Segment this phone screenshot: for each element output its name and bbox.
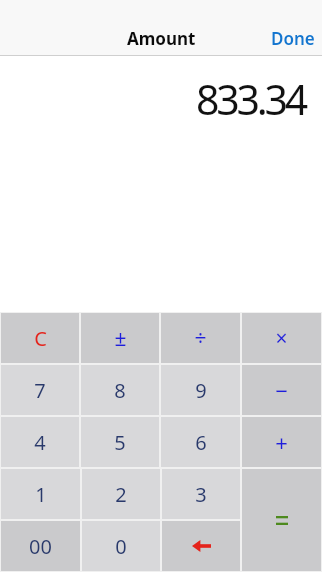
button[interactable]: ÷: [161, 313, 240, 363]
staticText: C: [34, 325, 47, 352]
button[interactable]: 4: [1, 417, 79, 467]
button[interactable]: 6: [161, 417, 240, 467]
button[interactable]: 1: [1, 469, 80, 519]
staticText: Amount: [127, 27, 196, 50]
staticText: 5: [114, 429, 126, 456]
staticText: 0: [115, 533, 127, 560]
button[interactable]: [162, 521, 240, 571]
button[interactable]: 00: [1, 521, 80, 571]
staticText: 7: [34, 377, 46, 404]
button[interactable]: 0: [82, 521, 160, 571]
staticText: 8: [114, 377, 126, 404]
staticText: ×: [275, 324, 288, 353]
staticText: 9: [195, 377, 207, 404]
button[interactable]: 7: [1, 365, 79, 415]
button[interactable]: [242, 469, 321, 571]
staticText: −: [275, 375, 288, 405]
staticText: 3: [195, 481, 207, 508]
button[interactable]: +: [242, 417, 321, 467]
button[interactable]: Done: [271, 27, 322, 55]
staticText: +: [275, 427, 288, 457]
staticText: 6: [195, 429, 207, 456]
button[interactable]: 3: [162, 469, 240, 519]
button[interactable]: ±: [81, 313, 159, 363]
button[interactable]: 5: [81, 417, 159, 467]
staticText: 833.34: [196, 71, 306, 127]
button[interactable]: ×: [242, 313, 321, 363]
staticText: ±: [114, 324, 127, 353]
button[interactable]: −: [242, 365, 321, 415]
staticText: Done: [271, 27, 315, 50]
staticText: 4: [34, 429, 46, 456]
button[interactable]: 8: [81, 365, 159, 415]
button[interactable]: C: [1, 313, 79, 363]
staticText: 00: [29, 533, 52, 560]
button[interactable]: 9: [161, 365, 240, 415]
staticText: 1: [35, 481, 47, 508]
staticText: ÷: [194, 324, 207, 353]
button[interactable]: 2: [82, 469, 160, 519]
staticText: 2: [115, 481, 127, 508]
